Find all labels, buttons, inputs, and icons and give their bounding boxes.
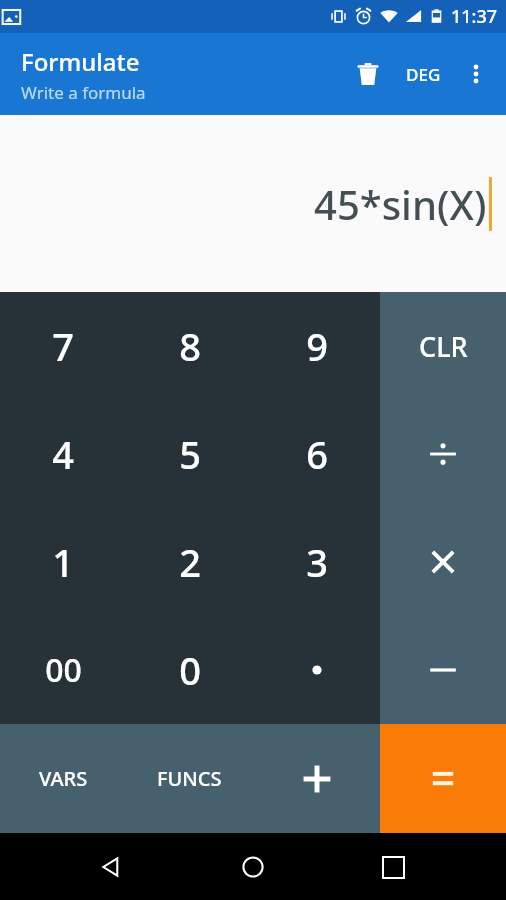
button[interactable]: Divide — [380, 400, 506, 508]
button[interactable]: 4 — [0, 400, 126, 508]
button[interactable]: 7 — [0, 292, 126, 400]
other: Multiply — [428, 547, 458, 577]
button[interactable]: VARS — [0, 724, 126, 833]
staticText: DEG — [406, 63, 441, 86]
staticText: 3 — [306, 536, 328, 588]
staticText: FUNCS — [157, 765, 222, 792]
button[interactable]: Multiply — [380, 508, 506, 616]
staticText: 00 — [45, 648, 82, 692]
staticText: Formulate — [21, 45, 140, 78]
staticText: VARS — [39, 765, 88, 792]
staticText: 8 — [179, 320, 201, 372]
button[interactable]: Back — [88, 843, 136, 891]
button[interactable]: Home — [229, 843, 277, 891]
other: Minus — [427, 654, 459, 686]
staticText: Write a formula — [21, 81, 146, 104]
button[interactable]: CLR — [380, 292, 506, 400]
button[interactable]: 8 — [126, 292, 253, 400]
button[interactable]: 1 — [0, 508, 126, 616]
button[interactable]: 6 — [253, 400, 380, 508]
button[interactable]: DEG — [392, 50, 454, 98]
button[interactable]: 0 — [126, 616, 253, 724]
staticText: 6 — [306, 428, 328, 480]
button[interactable]: 5 — [126, 400, 253, 508]
button[interactable]: 9 — [253, 292, 380, 400]
button[interactable]: FUNCS — [126, 724, 253, 833]
staticText: 5 — [179, 428, 201, 480]
staticText: CLR — [419, 328, 468, 365]
other: Divide — [426, 437, 460, 471]
button[interactable]: 00 — [0, 616, 126, 724]
staticText: 7 — [52, 320, 74, 372]
button[interactable]: 3 — [253, 508, 380, 616]
button[interactable]: Plus — [253, 724, 380, 833]
staticText: 0 — [179, 644, 201, 696]
staticText: 2 — [179, 536, 201, 588]
button[interactable]: Recent apps — [369, 843, 417, 891]
staticText: 1 — [52, 536, 74, 588]
staticText: 9 — [306, 320, 328, 372]
staticText: 11:37 — [451, 4, 498, 29]
staticText: 45*sin(X) — [314, 177, 487, 231]
button[interactable] — [253, 616, 380, 724]
button[interactable]: Delete — [344, 50, 392, 98]
staticText: 4 — [52, 428, 74, 480]
button[interactable]: More options — [454, 52, 498, 96]
button[interactable]: Equals — [380, 724, 506, 833]
button[interactable]: 2 — [126, 508, 253, 616]
button[interactable]: Minus — [380, 616, 506, 724]
